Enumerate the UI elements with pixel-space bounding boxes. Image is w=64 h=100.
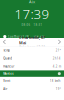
staticText: 21° — [56, 49, 61, 52]
staticText: 4.2 m — [53, 65, 61, 68]
staticText: Hauteur — [3, 65, 14, 68]
button[interactable]: Temp — [0, 46, 64, 54]
button[interactable]: Previous day — [0, 38, 9, 46]
button[interactable]: Vent — [0, 77, 64, 85]
staticText: Aix — [29, 0, 35, 4]
staticText: 19° — [56, 87, 61, 91]
staticText: Temp — [3, 49, 10, 52]
staticText: Quand — [3, 57, 12, 60]
staticText: Vent — [3, 79, 10, 83]
button[interactable]: Next day — [55, 38, 64, 46]
staticText: 18 km/h — [50, 79, 61, 83]
button[interactable]: Air — [0, 85, 64, 93]
staticText: 08:06 18:31 — [21, 23, 42, 27]
staticText: Charleville, 07 Mai — [19, 35, 45, 45]
staticText: Coefficient 78 — vive-eau — [8, 35, 45, 38]
staticText: Marée haute 17:39 — [18, 46, 45, 49]
button[interactable]: Quand — [0, 54, 64, 62]
staticText: 2h14 — [53, 57, 61, 60]
staticText: Marées — [3, 72, 13, 75]
staticText: 17:39 — [14, 5, 49, 23]
staticText: Air — [3, 87, 7, 91]
button[interactable]: Hauteur — [0, 62, 64, 70]
